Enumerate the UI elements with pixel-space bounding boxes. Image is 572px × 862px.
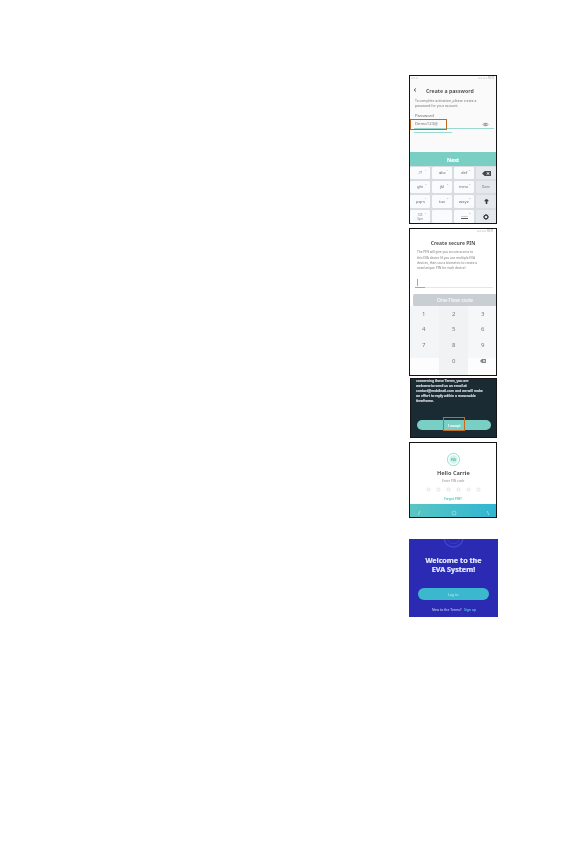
staticText: abc: [439, 170, 446, 176]
staticText: 0: [452, 357, 456, 365]
staticText: Next: [447, 156, 460, 163]
staticText: 2: [452, 310, 456, 318]
staticText: mno: [459, 184, 469, 190]
staticText: ▫ ▫ ▫: [411, 76, 418, 80]
staticText: ▫ ▫ ▫ ▫ 10:11: [477, 229, 494, 233]
staticText: Password: [415, 113, 434, 119]
staticText: pqrs: [416, 199, 425, 205]
staticText: 9: [469, 196, 471, 199]
button[interactable]: [476, 167, 496, 179]
staticText: New to the Terms?: [432, 607, 462, 612]
button[interactable]: 3: [468, 306, 497, 321]
button[interactable]: 0: [439, 353, 468, 369]
staticText: 2: [447, 168, 449, 171]
button[interactable]: Show password: [482, 121, 488, 127]
button[interactable]: Back: [416, 510, 421, 515]
staticText: Hello Carrie: [437, 469, 470, 477]
staticText: .?!: [418, 170, 423, 176]
button[interactable]: def: [454, 167, 474, 179]
staticText: tuv: [439, 199, 446, 205]
button[interactable]: 5: [439, 321, 468, 337]
button[interactable]: Sign up: [464, 607, 476, 612]
staticText: 3: [481, 310, 485, 318]
staticText: Demo123@: [415, 121, 438, 127]
staticText: Create secure PIN: [409, 240, 497, 247]
button[interactable]: jkl: [432, 181, 452, 193]
button[interactable]: I accept: [417, 420, 491, 430]
button[interactable]: abc: [432, 167, 452, 179]
button[interactable]: One-Time code: [413, 294, 497, 306]
staticText: 8: [452, 341, 456, 349]
staticText: 4: [422, 325, 426, 333]
button[interactable]: 6: [468, 321, 497, 337]
button[interactable]: [476, 195, 496, 208]
staticText: I accept: [448, 423, 461, 428]
staticText: def: [461, 170, 468, 176]
staticText: jkl: [440, 184, 445, 190]
staticText: To complete activation, please create a …: [415, 98, 477, 108]
staticText: concerning these Terms, you are welcome …: [416, 378, 483, 403]
button[interactable]: tuv: [432, 195, 452, 208]
staticText: 123 Sym: [417, 213, 423, 220]
button[interactable]: 2: [439, 306, 468, 321]
staticText: 7: [422, 341, 426, 349]
staticText: 4: [425, 182, 427, 185]
staticText: EVA: [451, 458, 456, 462]
button[interactable]: 123 Sym: [410, 210, 430, 223]
button[interactable]: [409, 353, 439, 369]
button[interactable]: wxyz: [454, 195, 474, 208]
button[interactable]: [468, 353, 497, 369]
button[interactable]: Done: [476, 181, 496, 193]
button[interactable]: Recents: [485, 510, 490, 515]
button[interactable]: 9: [468, 337, 497, 353]
button[interactable]: 4: [409, 321, 439, 337]
staticText: The PIN will give you secure access to t…: [417, 250, 478, 270]
staticText: 7: [425, 196, 427, 199]
staticText: 5: [447, 182, 449, 185]
button[interactable]: Log in: [418, 588, 489, 600]
staticText: Log in: [448, 592, 459, 597]
button[interactable]: Home: [451, 510, 456, 515]
button[interactable]: Next: [409, 152, 497, 166]
staticText: 9: [481, 341, 485, 349]
staticText: Welcome to the EVA System!: [409, 555, 498, 574]
staticText: 1: [422, 310, 426, 318]
button[interactable]: 1: [409, 306, 439, 321]
button[interactable]: Back: [409, 84, 421, 96]
staticText: Enter PIN code: [442, 479, 465, 483]
staticText: 8: [447, 196, 449, 199]
staticText: One-Time code: [437, 297, 473, 304]
staticText: 6: [469, 182, 471, 185]
staticText: 5: [452, 325, 456, 333]
button[interactable]: 7: [409, 337, 439, 353]
staticText: 3: [469, 168, 471, 171]
staticText: 6: [481, 325, 485, 333]
staticText: wxyz: [459, 199, 469, 205]
button[interactable]: · space ·: [454, 210, 474, 223]
staticText: 0: [469, 211, 471, 214]
button[interactable]: Forgot PIN?: [444, 497, 462, 501]
button[interactable]: [476, 210, 496, 223]
staticText: *: [425, 211, 427, 214]
button[interactable]: ghi: [410, 181, 430, 193]
staticText: 1: [425, 168, 427, 171]
staticText: Done: [482, 185, 491, 189]
button[interactable]: 8: [439, 337, 468, 353]
staticText: · space ·: [460, 214, 469, 217]
staticText: ▫ ▫ ▫ ▫ 10:11: [478, 76, 495, 80]
button[interactable]: mno: [454, 181, 474, 193]
button[interactable]: pqrs: [410, 195, 430, 208]
staticText: ghi: [417, 184, 424, 190]
staticText: Create a password: [426, 87, 474, 94]
button[interactable]: .?!: [410, 167, 430, 179]
